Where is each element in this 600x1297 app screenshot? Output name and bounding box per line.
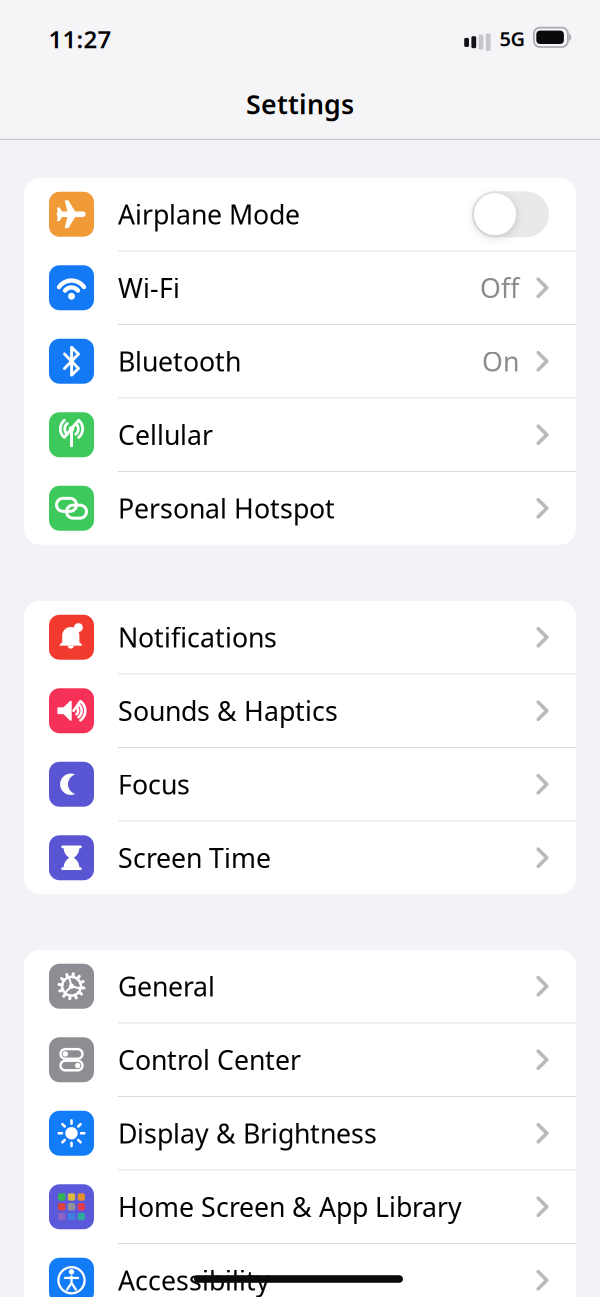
staticText: On: [482, 343, 519, 379]
staticText: Sounds & Haptics: [118, 693, 338, 728]
staticText: General: [118, 968, 215, 1004]
button[interactable]: Airplane Mode: [472, 191, 549, 237]
staticText: Control Center: [118, 1042, 301, 1077]
staticText: Personal Hotspot: [118, 490, 335, 526]
button[interactable]: General: [24, 950, 576, 1022]
button[interactable]: Cellular: [24, 398, 576, 471]
button[interactable]: Display & Brightness: [24, 1097, 576, 1169]
staticText: Off: [480, 270, 519, 305]
staticText: Bluetooth: [118, 343, 241, 379]
staticText: Display & Brightness: [118, 1115, 377, 1151]
staticText: Airplane Mode: [118, 196, 300, 232]
staticText: Settings: [246, 86, 354, 122]
button[interactable]: Notifications: [24, 601, 576, 673]
button[interactable]: Accessibility: [24, 1244, 576, 1297]
button[interactable]: Home Screen & App Library: [24, 1170, 576, 1243]
staticText: Notifications: [118, 619, 277, 655]
button[interactable]: Sounds & Haptics: [24, 674, 576, 747]
staticText: Cellular: [118, 417, 213, 452]
staticText: Home Screen & App Library: [118, 1189, 462, 1224]
button[interactable]: Personal Hotspot: [24, 472, 576, 544]
staticText: 5G: [499, 25, 525, 52]
staticText: 11:27: [48, 23, 111, 55]
button[interactable]: Bluetooth: [24, 325, 576, 397]
button[interactable]: Wi-Fi: [24, 251, 576, 324]
button[interactable]: Focus: [24, 748, 576, 820]
button[interactable]: Control Center: [24, 1023, 576, 1096]
staticText: Focus: [118, 766, 190, 802]
staticText: Screen Time: [118, 840, 271, 875]
button[interactable]: Screen Time: [24, 821, 576, 894]
staticText: Accessibility: [118, 1262, 270, 1297]
staticText: Wi-Fi: [118, 270, 180, 305]
